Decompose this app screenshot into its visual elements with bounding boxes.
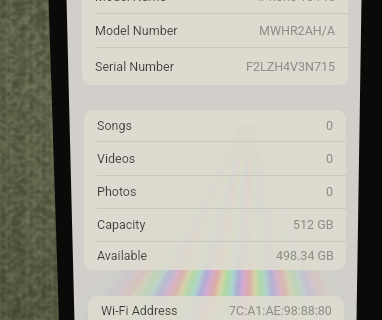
button[interactable]: Photos [84, 175, 346, 208]
button[interactable]: Capacity [84, 208, 346, 241]
staticText: 0 [326, 118, 334, 133]
staticText: 498.34 GB [276, 248, 334, 263]
staticText: Videos [97, 151, 136, 166]
staticText: 0 [326, 184, 334, 199]
staticText: Available [97, 248, 148, 263]
staticText: 0 [326, 151, 334, 166]
button[interactable]: Serial Number [82, 47, 348, 85]
staticText: Songs [97, 118, 132, 133]
staticText: Model Name [95, 0, 167, 4]
staticText: F2LZH4V3N715 [246, 59, 336, 74]
staticText: MWHR2AH/A [259, 23, 336, 38]
button[interactable]: Available [84, 241, 346, 270]
button[interactable]: Videos [84, 141, 346, 175]
staticText: Wi-Fi Address [101, 303, 178, 318]
staticText: 512 GB [293, 217, 334, 232]
button[interactable]: Songs [84, 110, 346, 141]
button[interactable]: Wi-Fi Address [88, 296, 344, 320]
staticText: Model Number [95, 23, 178, 38]
staticText: Capacity [97, 217, 146, 232]
staticText: Serial Number [95, 59, 174, 74]
staticText: Photos [97, 184, 137, 199]
staticText: 7C:A1:AE:98:88:80 [229, 303, 332, 318]
button[interactable]: Model Name [82, 0, 348, 13]
staticText: iPhone 15 Pro [258, 0, 336, 4]
button[interactable]: Model Number [82, 13, 348, 47]
